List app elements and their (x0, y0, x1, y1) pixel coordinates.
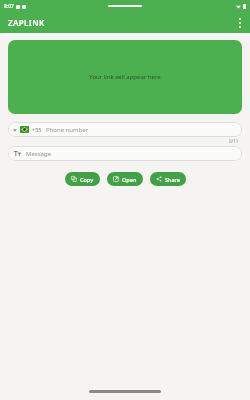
button[interactable]: Message (8, 146, 242, 161)
button[interactable]: +55 (8, 122, 242, 137)
staticText: Phone number (46, 126, 89, 134)
button[interactable]: Open (107, 172, 143, 186)
staticText: Your link will appear here (89, 73, 161, 81)
staticText: 0/11 (229, 138, 239, 144)
staticText: Message (26, 150, 52, 158)
staticText: ZAPLINK (8, 17, 45, 28)
staticText: Copy (80, 176, 94, 183)
button[interactable]: Share (150, 172, 186, 186)
button[interactable]: Your link will appear here (8, 40, 242, 114)
staticText: 8:07 (4, 3, 14, 10)
button[interactable]: Copy (65, 172, 100, 186)
staticText: Open (122, 176, 137, 183)
staticText: Share (165, 176, 180, 183)
button[interactable]: More options (229, 12, 250, 33)
staticText: +55 (32, 126, 42, 133)
